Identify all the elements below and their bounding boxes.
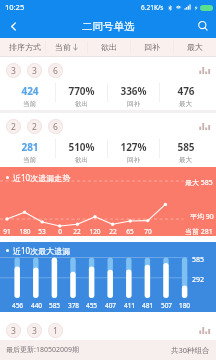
staticText: 455 [82, 301, 101, 310]
staticText: 292 [192, 275, 205, 285]
staticText: 180 [16, 227, 34, 236]
other: Chart [199, 67, 210, 74]
staticText: 476 [177, 84, 195, 98]
staticText: 6.21K/s [141, 3, 164, 12]
button[interactable]: 3 [0, 317, 216, 343]
button[interactable]: Back [0, 14, 26, 38]
staticText: 最大 [179, 156, 192, 164]
staticText: 456 [8, 301, 27, 310]
staticText: 407 [101, 301, 120, 310]
button[interactable]: 欲出 [88, 38, 130, 56]
staticText: 共30种组合 [171, 345, 210, 355]
staticText: 6 [53, 65, 58, 77]
staticText: 91 [0, 227, 16, 236]
staticText: 22 [68, 227, 86, 236]
staticText: 70 [139, 227, 157, 236]
staticText: 回补 [127, 156, 140, 164]
staticText: 585 [45, 301, 64, 310]
staticText: 22 [104, 227, 122, 236]
staticText: 3 [32, 325, 37, 337]
staticText: 3 [32, 65, 37, 77]
staticText: 当前 [55, 42, 71, 52]
staticText: 欲出 [75, 100, 88, 108]
staticText: 2 [11, 121, 16, 133]
staticText: 585 [192, 255, 205, 265]
staticText: 65 [121, 227, 139, 236]
staticText: 336% [120, 84, 147, 98]
staticText: 排序方式 [9, 42, 41, 52]
staticText: 当前 281 [185, 227, 213, 237]
staticText: 281 [21, 140, 39, 154]
other: Chart [199, 123, 210, 130]
staticText: 欲出 [75, 156, 88, 164]
staticText: 回补 [144, 42, 160, 52]
staticText: 510% [68, 140, 95, 154]
staticText: 6 [53, 121, 58, 133]
staticText: 440 [27, 301, 46, 310]
staticText: 585 [177, 140, 195, 154]
staticText: 当前 [23, 156, 36, 164]
staticText: 平均 90 [190, 212, 214, 222]
staticText: 180 [175, 301, 194, 310]
button[interactable]: 最大 [174, 38, 216, 56]
staticText: 424 [21, 84, 39, 98]
staticText: 最大 [187, 42, 203, 52]
button[interactable]: 2 [0, 113, 216, 166]
staticText: 二同号单选 [82, 20, 135, 33]
button[interactable]: 3 [0, 57, 216, 110]
staticText: 53 [33, 227, 51, 236]
button[interactable]: 当前 [46, 38, 87, 56]
staticText: 3 [11, 325, 16, 337]
button[interactable]: 回补 [131, 38, 173, 56]
staticText: 回补 [127, 100, 140, 108]
staticText: 127% [120, 140, 147, 154]
staticText: 当前 [23, 100, 36, 108]
staticText: 3 [11, 65, 16, 77]
button[interactable]: Search [190, 14, 216, 38]
staticText: 欲出 [101, 42, 117, 52]
other: Chart [199, 327, 210, 334]
staticText: 411 [120, 301, 139, 310]
staticText: 378 [64, 301, 83, 310]
staticText: 507 [157, 301, 176, 310]
staticText: 0 [51, 227, 69, 236]
button[interactable]: 排序方式 [4, 38, 45, 56]
staticText: 最大 585 [185, 178, 213, 188]
staticText: 770% [68, 84, 95, 98]
staticText: 2 [32, 121, 37, 133]
staticText: 最后更新:180502009期 [6, 345, 79, 355]
staticText: 1 [53, 325, 58, 337]
staticText: 近10次最大遗漏 [13, 245, 71, 256]
staticText: 120 [86, 227, 104, 236]
staticText: 近10次遗漏走势 [13, 172, 71, 183]
staticText: 最大 [179, 100, 192, 108]
staticText: 481 [138, 301, 157, 310]
staticText: 10:25 [5, 2, 25, 12]
